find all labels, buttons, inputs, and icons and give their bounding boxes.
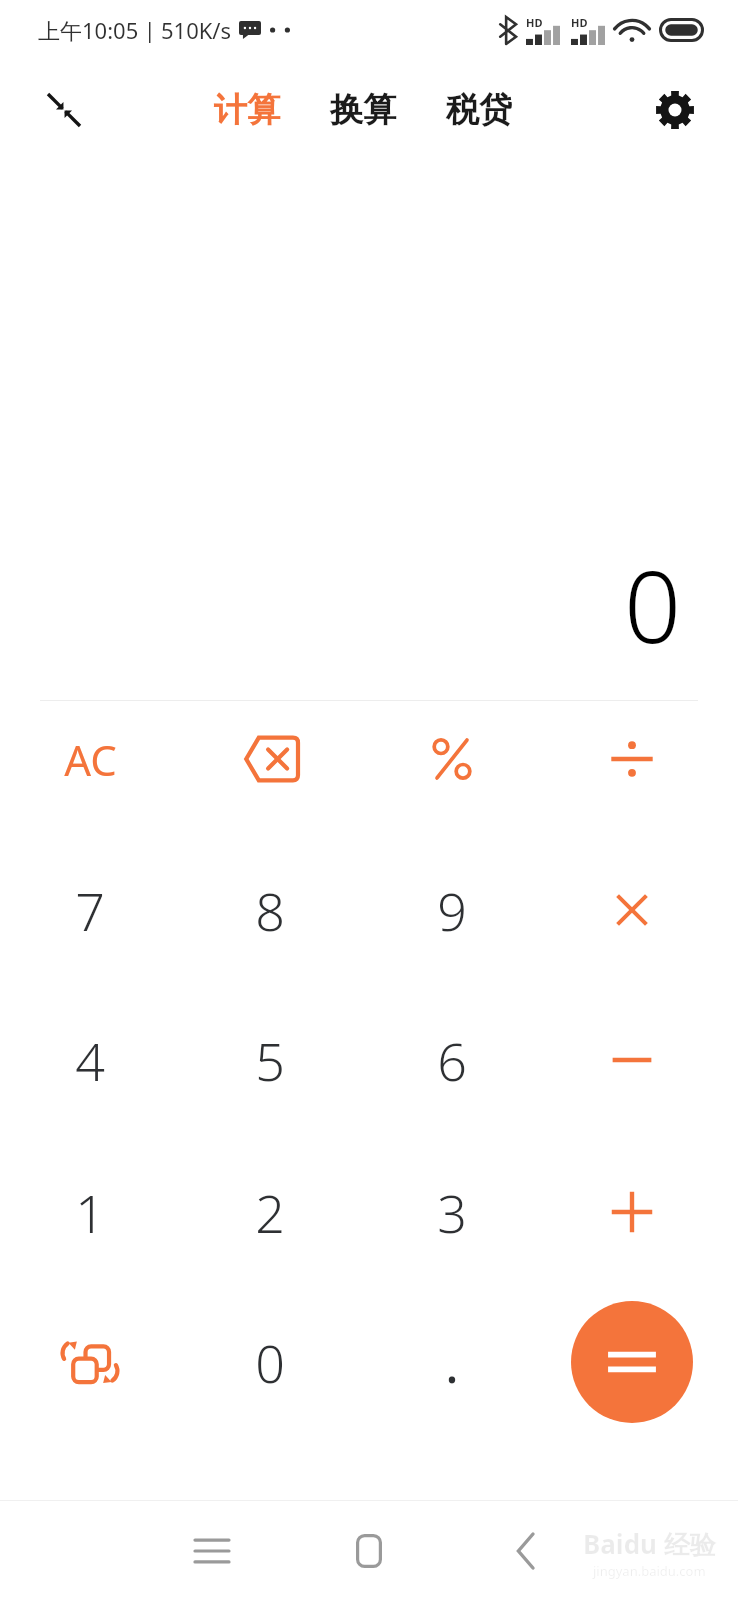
staticText: 2 bbox=[255, 1177, 285, 1248]
staticText: jingyan.baidu.com bbox=[593, 1562, 706, 1580]
button[interactable]: Divide bbox=[547, 694, 717, 824]
button[interactable]: 计算 bbox=[210, 81, 284, 139]
button[interactable]: Equals bbox=[571, 1301, 693, 1423]
button[interactable]: Percent bbox=[367, 694, 537, 824]
button[interactable]: 9 bbox=[367, 845, 537, 975]
staticText: 4 bbox=[75, 1025, 105, 1096]
button[interactable]: 5 bbox=[185, 995, 355, 1125]
button[interactable]: Convert bbox=[5, 1297, 175, 1427]
button[interactable]: 0 bbox=[185, 1297, 355, 1427]
button[interactable]: 3 bbox=[367, 1147, 537, 1277]
staticText: 3 bbox=[437, 1177, 467, 1248]
staticText: | bbox=[144, 16, 156, 45]
button[interactable]: Backspace bbox=[185, 694, 355, 824]
button[interactable]: 7 bbox=[5, 845, 175, 975]
staticText: 6 bbox=[437, 1025, 467, 1096]
staticText: 0 bbox=[255, 1327, 285, 1398]
staticText: 9 bbox=[437, 875, 467, 946]
button[interactable]: Minus bbox=[547, 995, 717, 1125]
staticText: 7 bbox=[75, 875, 105, 946]
button[interactable]: Recents bbox=[160, 1501, 264, 1600]
staticText: 510K/s bbox=[161, 15, 232, 45]
staticText: 8 bbox=[255, 875, 285, 946]
staticText: 上午10:05 bbox=[38, 15, 139, 45]
button[interactable]: Settings bbox=[639, 74, 711, 146]
staticText: HD bbox=[526, 15, 543, 30]
button[interactable]: Back bbox=[474, 1501, 578, 1600]
button[interactable]: 税贷 bbox=[442, 81, 516, 139]
button[interactable]: 1 bbox=[5, 1147, 175, 1277]
button[interactable]: AC bbox=[5, 694, 175, 824]
staticText: . bbox=[445, 1327, 459, 1398]
button[interactable]: Collapse bbox=[28, 74, 100, 146]
button[interactable]: 换算 bbox=[326, 81, 400, 139]
button[interactable]: 6 bbox=[367, 995, 537, 1125]
staticText: 换算 bbox=[330, 89, 396, 131]
button[interactable]: . bbox=[367, 1297, 537, 1427]
staticText: 1 bbox=[75, 1177, 105, 1248]
button[interactable]: Multiply bbox=[547, 845, 717, 975]
staticText: 税贷 bbox=[446, 89, 512, 131]
staticText: 5 bbox=[255, 1025, 285, 1096]
button[interactable]: 2 bbox=[185, 1147, 355, 1277]
staticText: Baidu 经验 bbox=[583, 1526, 716, 1562]
staticText: 计算 bbox=[214, 89, 280, 131]
staticText: 0 bbox=[624, 536, 682, 672]
staticText: AC bbox=[64, 731, 117, 788]
button[interactable]: 4 bbox=[5, 995, 175, 1125]
button[interactable]: 8 bbox=[185, 845, 355, 975]
button[interactable]: Home bbox=[317, 1501, 421, 1600]
button[interactable]: Plus bbox=[547, 1147, 717, 1277]
staticText: HD bbox=[571, 15, 588, 30]
